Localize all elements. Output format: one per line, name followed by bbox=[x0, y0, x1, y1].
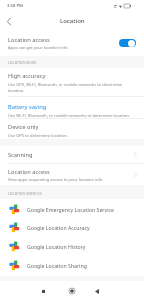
staticText: Google Emergency Location Service bbox=[27, 206, 114, 213]
staticText: Google Location Sharing bbox=[27, 262, 87, 269]
staticText: View apps requesting access to your loca… bbox=[8, 177, 103, 183]
button[interactable]: Scanning bbox=[0, 146, 144, 163]
staticText: Use GPS to determine location. bbox=[8, 133, 68, 139]
button[interactable]: Home bbox=[63, 282, 81, 300]
staticText: Device only bbox=[8, 123, 39, 131]
button[interactable]: Back bbox=[0, 12, 18, 30]
button[interactable]: Device only bbox=[0, 118, 144, 139]
staticText: High accuracy bbox=[8, 72, 46, 80]
staticText: Location access bbox=[8, 168, 50, 176]
button[interactable]: Google Location Sharing bbox=[0, 256, 144, 274]
button[interactable]: Google Location Accuracy bbox=[0, 218, 144, 236]
button[interactable]: Location access bbox=[0, 163, 144, 185]
button[interactable]: Recent apps bbox=[34, 282, 52, 300]
staticText: LOCATION MODE bbox=[8, 60, 37, 64]
staticText: Google Location Accuracy bbox=[27, 224, 90, 231]
staticText: Google Location History bbox=[27, 243, 86, 250]
button[interactable]: Battery saving bbox=[0, 96, 144, 118]
staticText: LOCATION SERVICES bbox=[8, 191, 42, 195]
staticText: Use Wi-Fi, Bluetooth, or mobile networks… bbox=[8, 113, 130, 119]
button[interactable]: High accuracy bbox=[0, 68, 144, 96]
staticText: Location access bbox=[8, 36, 50, 44]
button[interactable]: Google Emergency Location Service bbox=[0, 200, 144, 218]
button[interactable]: Location access bbox=[0, 30, 144, 56]
staticText: Battery saving bbox=[8, 103, 47, 111]
staticText: Scanning bbox=[8, 151, 33, 159]
staticText: Apps can get your location info bbox=[8, 45, 68, 51]
button[interactable]: Back bbox=[88, 282, 106, 300]
staticText: 3:58 PM bbox=[7, 3, 23, 9]
staticText: Use GPS, Wi-Fi, Bluetooth, or mobile net… bbox=[8, 82, 133, 94]
button[interactable] bbox=[119, 39, 136, 47]
staticText: Location bbox=[60, 17, 85, 25]
button[interactable]: Google Location History bbox=[0, 237, 144, 255]
